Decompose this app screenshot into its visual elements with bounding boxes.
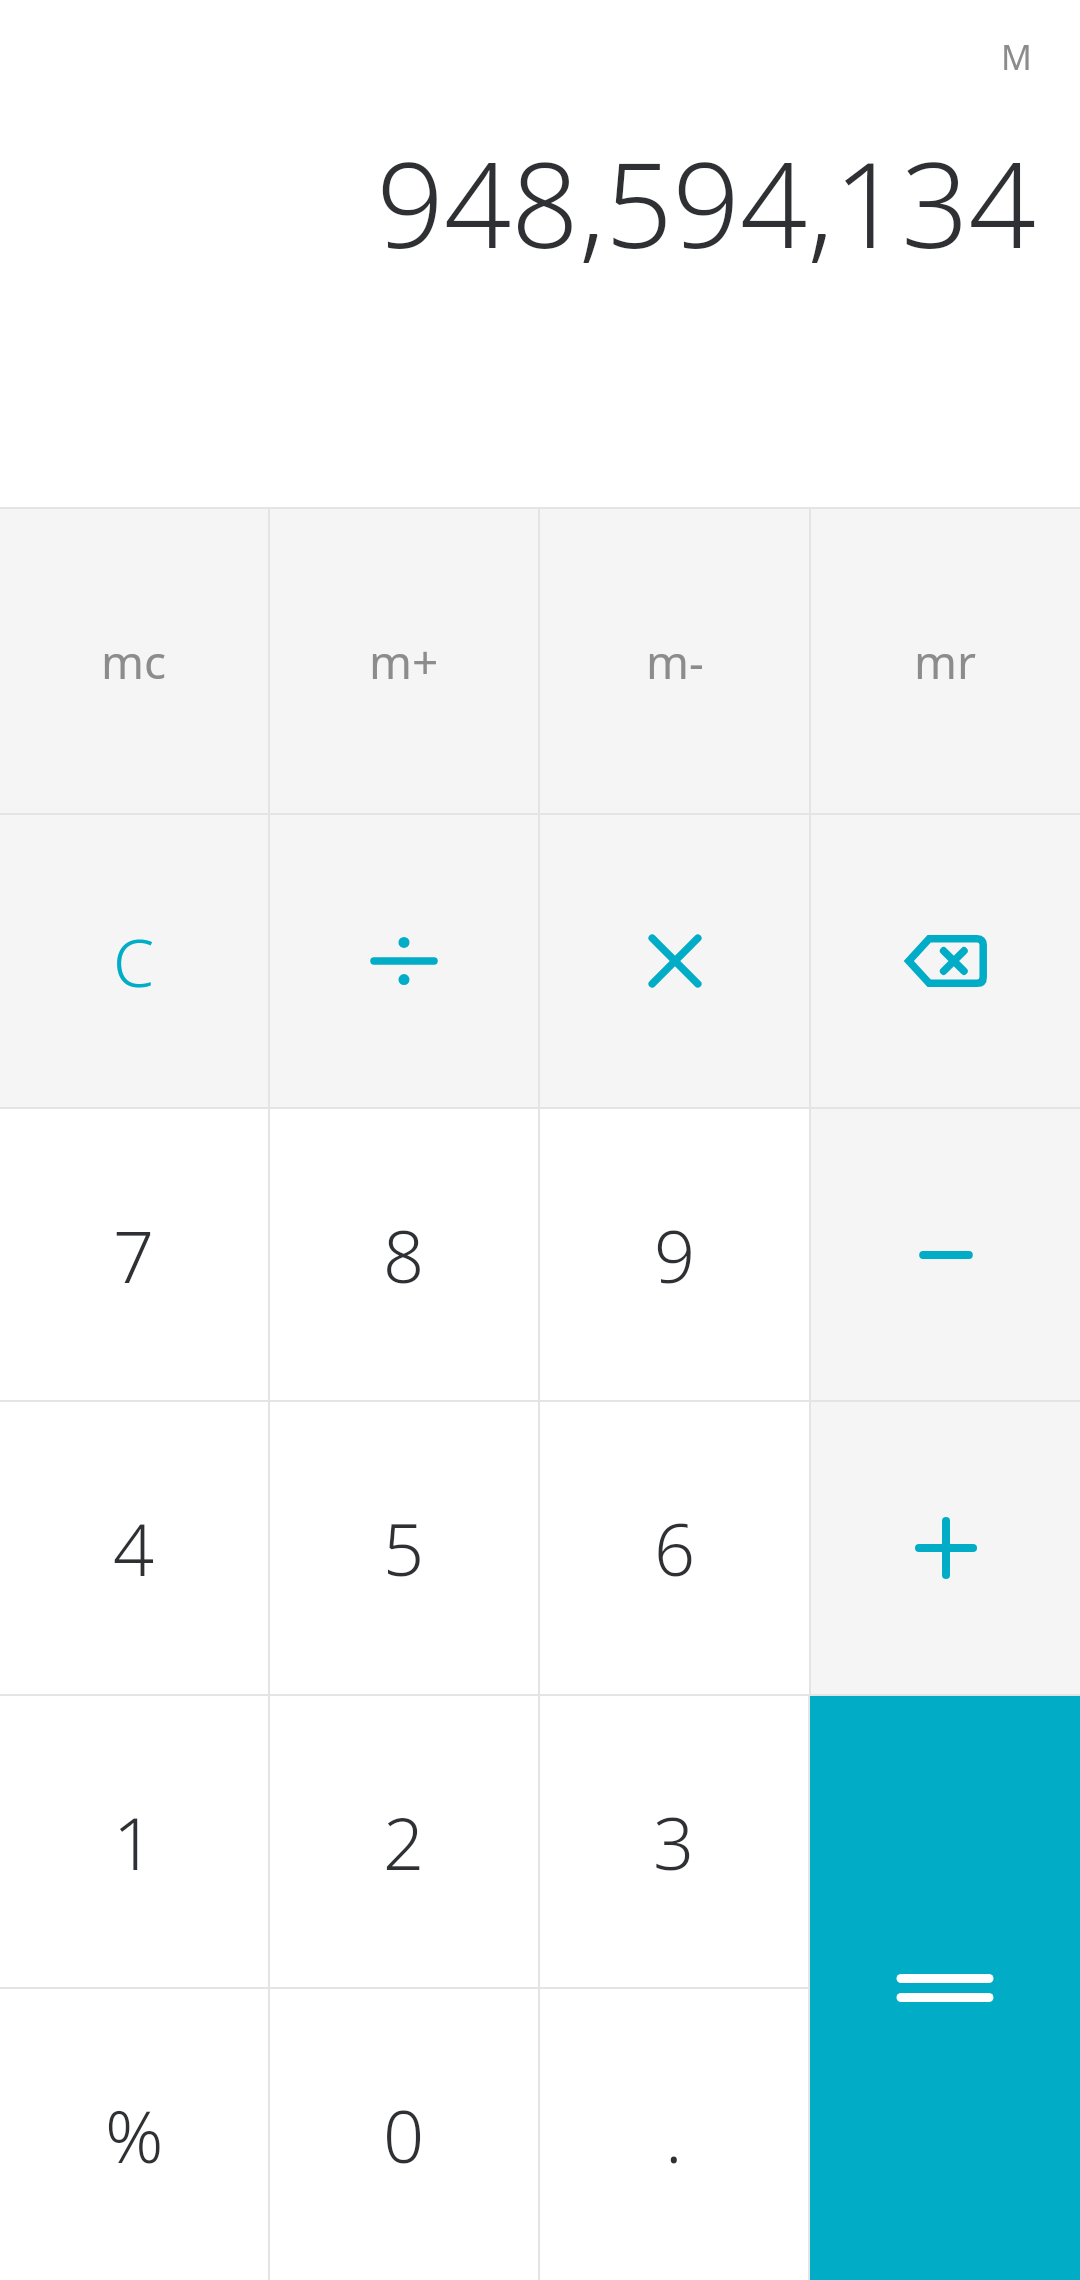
staticText: 3 bbox=[653, 1793, 695, 1891]
button[interactable]: 2 bbox=[270, 1696, 538, 1987]
staticText: 6 bbox=[654, 1499, 696, 1597]
staticText: 0 bbox=[383, 2086, 425, 2184]
staticText: 5 bbox=[383, 1499, 425, 1597]
button[interactable]: mr bbox=[811, 509, 1080, 813]
staticText: 948,594,134 bbox=[376, 122, 1036, 283]
button[interactable]: 1 bbox=[0, 1696, 268, 1987]
button[interactable]: % bbox=[0, 1989, 268, 2280]
staticText: m+ bbox=[369, 630, 439, 693]
button[interactable]: Multiply bbox=[540, 815, 809, 1107]
button[interactable]: Plus bbox=[811, 1402, 1080, 1694]
button[interactable]: m- bbox=[540, 509, 809, 813]
staticText: % bbox=[105, 2086, 164, 2184]
button[interactable]: 7 bbox=[0, 1109, 268, 1400]
button[interactable]: 6 bbox=[540, 1402, 809, 1694]
staticText: M bbox=[1001, 34, 1032, 80]
button[interactable]: mc bbox=[0, 509, 268, 813]
button[interactable]: Backspace bbox=[811, 815, 1080, 1107]
staticText: m- bbox=[646, 630, 704, 693]
button[interactable]: . bbox=[540, 1989, 808, 2280]
staticText: 7 bbox=[113, 1206, 155, 1304]
button[interactable]: Minus bbox=[811, 1109, 1080, 1400]
button[interactable]: C bbox=[0, 815, 268, 1107]
button[interactable]: 0 bbox=[270, 1989, 538, 2280]
button[interactable]: Divide bbox=[270, 815, 538, 1107]
button[interactable]: Equals bbox=[810, 1696, 1080, 2280]
staticText: 8 bbox=[383, 1206, 425, 1304]
button[interactable]: 3 bbox=[540, 1696, 808, 1987]
staticText: C bbox=[113, 916, 155, 1006]
staticText: 1 bbox=[113, 1793, 155, 1891]
staticText: 9 bbox=[654, 1206, 696, 1304]
staticText: . bbox=[665, 2086, 683, 2184]
button[interactable]: 8 bbox=[270, 1109, 538, 1400]
button[interactable]: 4 bbox=[0, 1402, 268, 1694]
button[interactable]: m+ bbox=[270, 509, 538, 813]
staticText: 2 bbox=[383, 1793, 425, 1891]
button[interactable]: 5 bbox=[270, 1402, 538, 1694]
button[interactable]: 9 bbox=[540, 1109, 809, 1400]
staticText: 4 bbox=[113, 1499, 155, 1597]
staticText: mr bbox=[914, 630, 977, 693]
staticText: mc bbox=[101, 630, 167, 693]
